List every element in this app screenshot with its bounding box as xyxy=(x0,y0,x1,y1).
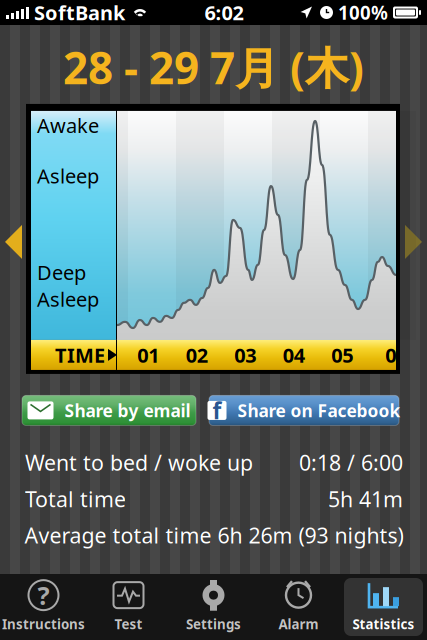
staticText: 100% xyxy=(338,0,388,25)
button[interactable]: Settings xyxy=(171,574,256,640)
staticText: TIME xyxy=(55,342,105,368)
staticText: Settings xyxy=(186,615,241,633)
staticText: 6:02 xyxy=(204,0,243,26)
button[interactable]: Alarm xyxy=(256,574,341,640)
staticText: Share by email xyxy=(64,399,190,422)
button[interactable]: ? xyxy=(1,574,86,640)
staticText: f xyxy=(212,395,221,425)
staticText: Alarm xyxy=(278,615,318,633)
staticText: Awake xyxy=(37,112,99,138)
staticText: 5h 41m xyxy=(328,485,403,513)
staticText: ? xyxy=(37,578,49,612)
staticText: 05 xyxy=(331,342,353,368)
staticText: Total time xyxy=(25,485,126,513)
staticText: 6h 26m (93 nights) xyxy=(217,521,403,549)
button[interactable]: f xyxy=(209,395,399,425)
staticText: 04 xyxy=(283,342,305,368)
staticText: Asleep xyxy=(37,286,99,312)
button[interactable]: Test xyxy=(86,574,171,640)
staticText: Asleep xyxy=(37,162,99,189)
staticText: Average total time xyxy=(24,521,211,549)
staticText: 0 xyxy=(385,342,396,368)
staticText: 28 - 29 7月 (木) xyxy=(63,38,364,96)
staticText: Share on Facebook xyxy=(237,399,400,422)
button[interactable]: Share by email xyxy=(22,395,196,425)
staticText: SoftBank xyxy=(34,0,125,26)
button[interactable]: Statistics xyxy=(341,574,426,640)
staticText: 01 xyxy=(137,342,159,368)
staticText: 03 xyxy=(234,342,256,368)
staticText: Test xyxy=(114,615,142,633)
button[interactable]: Next night xyxy=(399,219,427,265)
staticText: Statistics xyxy=(352,615,414,633)
staticText: Went to bed / woke up xyxy=(25,448,253,477)
staticText: Deep xyxy=(37,259,86,286)
button[interactable]: Previous night xyxy=(0,219,28,265)
staticText: 02 xyxy=(186,342,208,368)
staticText: Instructions xyxy=(2,615,85,633)
staticText: 0:18 / 6:00 xyxy=(299,448,403,477)
